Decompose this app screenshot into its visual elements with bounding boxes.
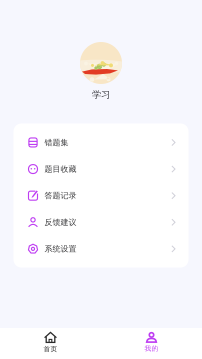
button[interactable]: 反馈建议 <box>13 209 188 236</box>
staticText: 学习 <box>92 89 110 100</box>
button[interactable]: 首页 <box>0 328 101 359</box>
staticText: 首页 <box>43 345 57 353</box>
button[interactable]: 错题集 <box>13 129 188 156</box>
staticText: 系统设置 <box>44 244 76 254</box>
button[interactable]: 题目收藏 <box>13 156 188 182</box>
staticText: 反馈建议 <box>44 217 76 227</box>
button[interactable]: 我的 <box>101 328 202 359</box>
button[interactable]: 系统设置 <box>13 236 188 262</box>
staticText: 题目收藏 <box>44 164 76 174</box>
staticText: 错题集 <box>44 138 68 147</box>
staticText: 我的 <box>144 344 158 353</box>
button[interactable]: 答题记录 <box>13 182 188 209</box>
staticText: 答题记录 <box>44 191 76 201</box>
